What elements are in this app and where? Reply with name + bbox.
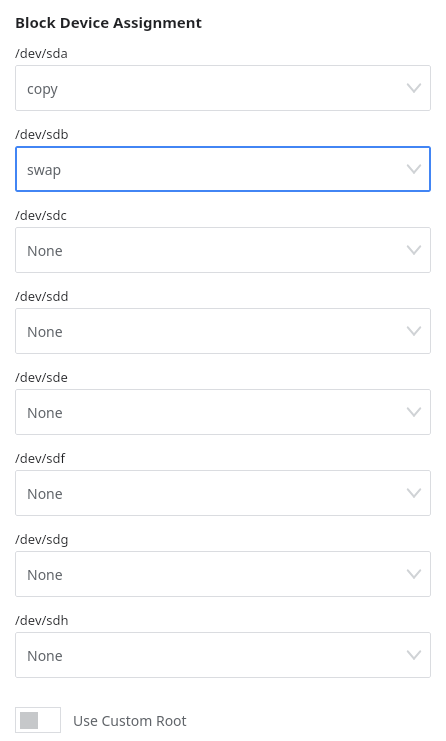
staticText: /dev/sdg: [15, 530, 69, 548]
staticText: Use Custom Root: [73, 711, 187, 730]
staticText: /dev/sdb: [15, 125, 69, 143]
staticText: None: [27, 322, 406, 341]
staticText: None: [27, 403, 406, 422]
staticText: /dev/sdh: [15, 611, 69, 629]
button[interactable]: None: [15, 227, 431, 273]
staticText: None: [27, 484, 406, 503]
button[interactable]: None: [15, 551, 431, 597]
button[interactable]: Use Custom Root toggle: [15, 707, 431, 733]
staticText: Block Device Assignment: [15, 12, 203, 32]
button[interactable]: copy: [15, 65, 431, 111]
button[interactable]: None: [15, 389, 431, 435]
button[interactable]: None: [15, 632, 431, 678]
staticText: /dev/sdf: [15, 449, 66, 467]
staticText: /dev/sdd: [15, 287, 69, 305]
staticText: None: [27, 646, 406, 665]
button[interactable]: None: [15, 470, 431, 516]
staticText: /dev/sdc: [15, 206, 67, 224]
button[interactable]: None: [15, 308, 431, 354]
other: Use Custom Root toggle: [15, 707, 61, 733]
staticText: /dev/sde: [15, 368, 68, 386]
button[interactable]: swap: [15, 146, 431, 192]
staticText: /dev/sda: [15, 44, 68, 62]
staticText: copy: [27, 79, 406, 98]
staticText: None: [27, 241, 406, 260]
staticText: None: [27, 565, 406, 584]
staticText: swap: [27, 160, 406, 179]
